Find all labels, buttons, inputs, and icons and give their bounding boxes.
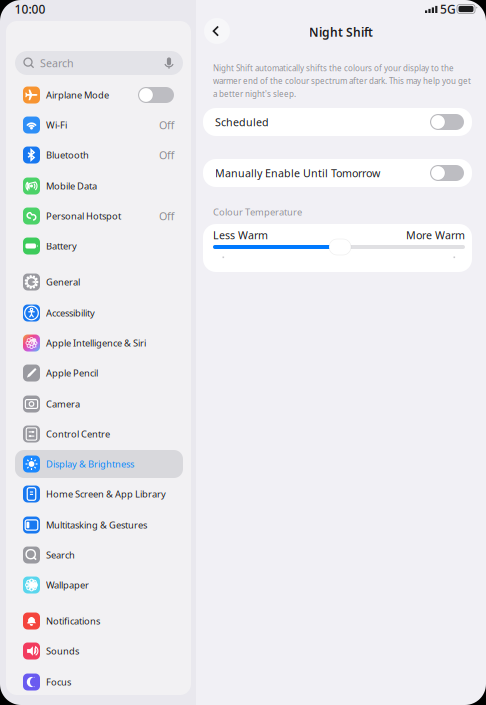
staticText: Night Shift	[309, 24, 373, 40]
staticText: More Warm	[406, 228, 465, 242]
button[interactable]: Wi-Fi	[15, 110, 183, 140]
staticText: Less Warm	[213, 228, 268, 242]
button[interactable]: Search	[15, 51, 183, 75]
staticText: Wi-Fi	[46, 119, 67, 131]
button[interactable]: Control Centre	[15, 419, 183, 449]
staticText: Multitasking & Gestures	[46, 519, 147, 531]
staticText: Control Centre	[46, 428, 110, 440]
staticText: 10:00	[14, 1, 45, 17]
button[interactable]: Notifications	[15, 606, 183, 636]
staticText: Search	[46, 549, 75, 561]
button[interactable]: Camera	[15, 389, 183, 419]
button[interactable]: Colour temperature	[213, 238, 465, 256]
staticText: Off	[159, 148, 174, 162]
staticText: Scheduled	[215, 115, 269, 129]
staticText: Notifications	[46, 615, 100, 627]
button[interactable]: Accessibility	[15, 298, 183, 328]
button[interactable]: Display & Brightness	[15, 449, 183, 479]
staticText: Apple Intelligence & Siri	[46, 337, 146, 349]
staticText: Airplane Mode	[46, 89, 109, 101]
staticText: Camera	[46, 398, 80, 410]
staticText: Focus	[46, 676, 71, 688]
button[interactable]: Multitasking & Gestures	[15, 510, 183, 540]
staticText: General	[46, 276, 80, 288]
button[interactable]: Sounds	[15, 636, 183, 666]
staticText: Display & Brightness	[46, 458, 134, 470]
staticText: 5G	[440, 1, 456, 17]
staticText: Home Screen & App Library	[46, 488, 166, 500]
staticText: Apple Pencil	[46, 367, 98, 379]
staticText: Sounds	[46, 645, 79, 657]
button[interactable]: Scheduled	[203, 108, 472, 136]
staticText: Colour Temperature	[213, 206, 302, 218]
button[interactable]: Apple Pencil	[15, 358, 183, 388]
staticText: Mobile Data	[46, 180, 97, 192]
staticText: Night Shift automatically shifts the col…	[213, 63, 471, 99]
staticText: Accessibility	[46, 307, 95, 319]
staticText: Battery	[46, 240, 77, 252]
staticText: Bluetooth	[46, 149, 89, 161]
staticText: Manually Enable Until Tomorrow	[215, 166, 380, 180]
button[interactable]: Wallpaper	[15, 570, 183, 600]
button[interactable]: Manually Enable Until Tomorrow	[203, 159, 472, 187]
staticText: Search	[40, 56, 74, 70]
staticText: Wallpaper	[46, 579, 89, 591]
button[interactable]: Focus	[15, 667, 183, 697]
button[interactable]: General	[15, 267, 183, 297]
button[interactable]: Bluetooth	[15, 140, 183, 170]
staticText: Off	[159, 209, 174, 223]
staticText: Personal Hotspot	[46, 210, 121, 222]
button[interactable]: Mobile Data	[15, 171, 183, 201]
button[interactable]: Home Screen & App Library	[15, 479, 183, 509]
button[interactable]: Battery	[15, 231, 183, 261]
button[interactable]: Apple Intelligence & Siri	[15, 328, 183, 358]
button[interactable]: Search	[15, 540, 183, 570]
button[interactable]: Personal Hotspot	[15, 201, 183, 231]
button[interactable]: Back	[204, 18, 230, 44]
button[interactable]: Airplane Mode	[15, 80, 183, 110]
staticText: Off	[159, 118, 174, 132]
